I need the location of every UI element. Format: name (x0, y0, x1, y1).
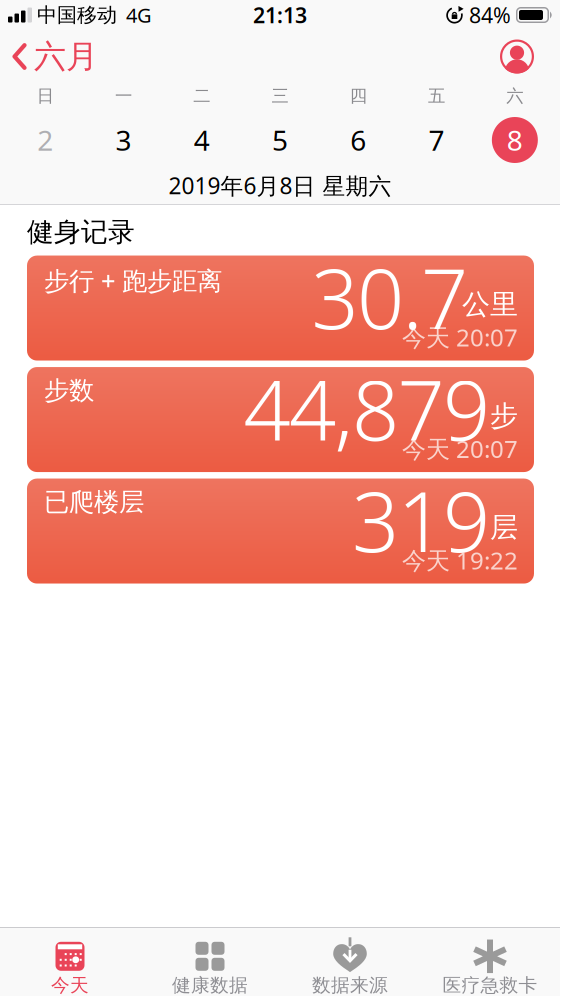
staticText: 步 (490, 399, 518, 433)
staticText: 层 (490, 510, 518, 545)
button[interactable]: 步行 + 跑步距离 (27, 256, 534, 361)
button[interactable]: 7 (414, 117, 460, 163)
staticText: 三 (271, 85, 288, 107)
staticText: 五 (428, 85, 445, 107)
staticText: 319 (352, 465, 490, 570)
button[interactable]: 3 (100, 117, 146, 163)
staticText: 已爬楼层 (44, 487, 144, 518)
staticText: 四 (350, 85, 367, 107)
staticText: 2019年6月8日 星期六 (168, 170, 391, 200)
button[interactable]: 已爬楼层 (27, 479, 534, 584)
staticText: 44,879 (243, 354, 490, 459)
staticText: 今天 20:07 (402, 433, 518, 465)
button[interactable]: 六月 (0, 37, 98, 76)
staticText: 健身记录 (27, 216, 135, 249)
staticText: 5 (272, 121, 288, 159)
button[interactable]: 医疗急救卡 (420, 941, 560, 996)
staticText: 六 (506, 85, 523, 107)
staticText: 公里 (462, 287, 518, 322)
staticText: 日 (37, 85, 54, 107)
button[interactable]: 步数 (27, 367, 534, 472)
button[interactable]: 4 (179, 117, 225, 163)
staticText: 21:13 (253, 1, 307, 29)
button[interactable]: 5 (257, 117, 303, 163)
staticText: 今天 (51, 974, 89, 996)
staticText: 3 (115, 121, 131, 159)
staticText: 4G (126, 2, 152, 28)
staticText: 步数 (44, 375, 94, 406)
staticText: 2 (37, 121, 53, 159)
button[interactable]: 数据来源 (280, 941, 420, 996)
staticText: 数据来源 (312, 974, 388, 996)
staticText: 六月 (34, 37, 98, 76)
staticText: 一 (115, 85, 132, 107)
button[interactable]: 8 (492, 117, 538, 163)
button[interactable]: 2 (22, 117, 68, 163)
staticText: 30.7 (311, 242, 468, 347)
staticText: 84% (469, 1, 511, 29)
staticText: 今天 20:07 (402, 321, 518, 353)
staticText: 二 (193, 85, 210, 107)
staticText: 8 (507, 121, 523, 159)
button[interactable]: 今天 (0, 941, 140, 996)
staticText: 医疗急救卡 (442, 974, 537, 996)
staticText: 7 (429, 121, 445, 159)
button[interactable]: 个人资料 (500, 39, 560, 73)
button[interactable]: 健康数据 (140, 941, 280, 996)
staticText: 中国移动 (37, 3, 117, 27)
staticText: 健康数据 (172, 974, 248, 996)
staticText: 6 (350, 121, 366, 159)
staticText: 4 (194, 121, 210, 159)
staticText: 步行 + 跑步距离 (44, 264, 222, 297)
button[interactable]: 6 (335, 117, 381, 163)
staticText: 今天 19:22 (402, 544, 518, 576)
